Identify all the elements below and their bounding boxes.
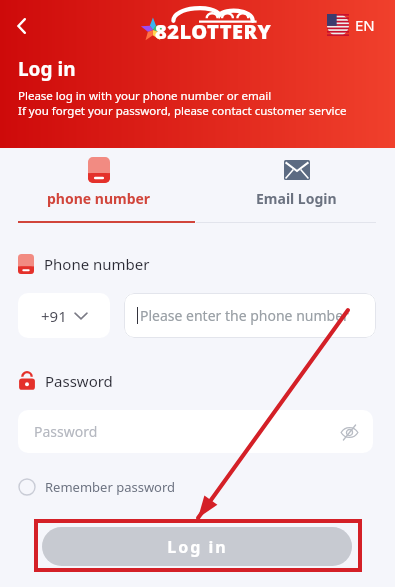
button[interactable]: Log in bbox=[42, 527, 352, 566]
staticText: Log in bbox=[167, 536, 228, 558]
button[interactable]: EN bbox=[325, 10, 377, 40]
staticText: Password bbox=[45, 371, 113, 391]
staticText: Please enter the phone number bbox=[140, 306, 349, 325]
staticText: Please log in with your phone number or … bbox=[18, 88, 272, 104]
staticText: Phone number bbox=[44, 254, 150, 274]
staticText: Password bbox=[34, 422, 98, 441]
staticText: 82LOTTERY bbox=[155, 18, 272, 45]
button[interactable]: Remember password bbox=[16, 476, 178, 498]
staticText: If you forget your password, please cont… bbox=[18, 103, 347, 119]
staticText: Log in bbox=[18, 56, 76, 82]
staticText: Remember password bbox=[45, 478, 176, 496]
button[interactable]: Back bbox=[4, 8, 40, 44]
button[interactable]: Email Login bbox=[197, 152, 395, 224]
staticText: EN bbox=[355, 15, 375, 35]
staticText: phone number bbox=[47, 189, 151, 208]
staticText: Email Login bbox=[256, 189, 337, 208]
button[interactable]: +91 bbox=[18, 293, 110, 338]
button[interactable]: Show password bbox=[335, 418, 363, 446]
button[interactable]: phone number bbox=[0, 152, 197, 224]
staticText: +91 bbox=[41, 306, 67, 326]
button[interactable]: Please enter the phone number bbox=[124, 293, 376, 338]
button[interactable]: Password bbox=[18, 410, 373, 453]
